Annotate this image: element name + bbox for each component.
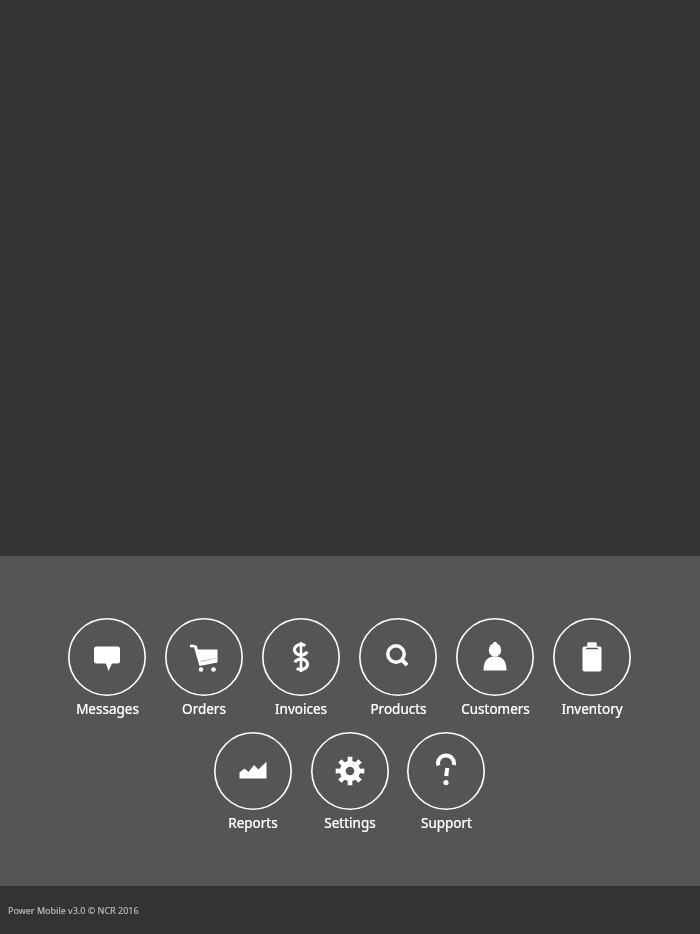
button[interactable]: Invoices [253, 618, 349, 718]
staticText: Reports [228, 814, 278, 832]
staticText: Messages [76, 700, 139, 718]
button[interactable]: Customers [447, 618, 543, 718]
button[interactable]: Support [398, 732, 494, 832]
staticText: Settings [324, 814, 376, 832]
button[interactable]: Settings [302, 732, 398, 832]
staticText: Support [421, 814, 472, 832]
staticText: Customers [461, 700, 530, 718]
button[interactable]: Products [350, 618, 446, 718]
button[interactable]: Orders [156, 618, 252, 718]
staticText: Orders [182, 700, 226, 718]
staticText: Products [370, 700, 427, 718]
button[interactable]: Reports [205, 732, 301, 832]
staticText: Invoices [275, 700, 327, 718]
button[interactable]: Messages [59, 618, 155, 718]
staticText: Inventory [561, 700, 623, 718]
button[interactable]: Inventory [544, 618, 640, 718]
staticText: Power Mobile v3.0 © NCR 2016 [8, 904, 139, 916]
